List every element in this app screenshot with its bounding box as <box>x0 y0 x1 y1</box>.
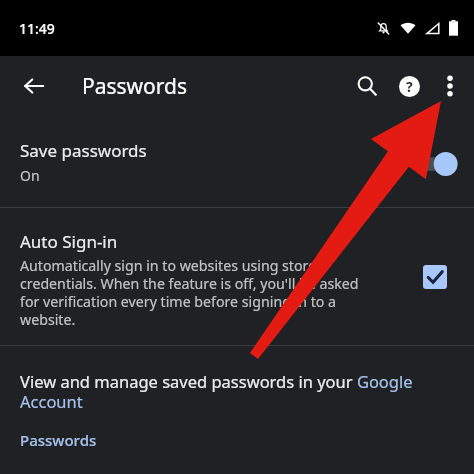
button[interactable]: View and manage saved passwords in your … <box>0 346 474 412</box>
button[interactable]: More options <box>430 65 470 107</box>
staticText: On <box>20 166 40 185</box>
staticText: View and manage saved passwords in your … <box>20 370 456 412</box>
button[interactable]: Help <box>388 65 430 107</box>
staticText: Passwords <box>20 430 97 450</box>
staticText: Auto Sign-in <box>20 230 118 253</box>
button[interactable]: Auto Sign-in <box>0 208 474 345</box>
staticText: 11:49 <box>19 19 55 38</box>
staticText: Automatically sign in to websites using … <box>20 256 372 329</box>
staticText: Passwords <box>82 72 188 101</box>
button[interactable]: Save passwords toggle <box>414 151 458 177</box>
button[interactable]: Search <box>346 65 388 107</box>
button[interactable]: Save passwords <box>0 116 474 207</box>
staticText: ? <box>406 77 413 96</box>
button[interactable]: Auto Sign-in checkbox <box>420 262 450 292</box>
button[interactable]: Back <box>14 66 54 106</box>
staticText: Save passwords <box>20 139 147 162</box>
